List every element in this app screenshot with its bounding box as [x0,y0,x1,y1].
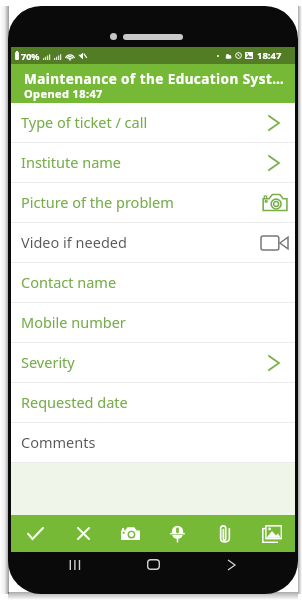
staticText: 70% [21,50,40,62]
button[interactable]: Recent apps [69,560,80,570]
button[interactable]: Take photo [107,515,154,552]
button[interactable]: Institute name [11,143,295,183]
button[interactable]: Contact name [11,263,295,303]
button[interactable]: Type of ticket / call [11,103,295,143]
button[interactable]: Severity [11,343,295,383]
button[interactable]: Comments [11,423,295,463]
staticText: Video if needed [21,232,127,252]
staticText: Requested date [21,392,128,412]
button[interactable]: Video if needed [11,223,295,263]
button[interactable]: Accept [11,515,59,552]
staticText: Severity [21,352,75,372]
button[interactable]: Gallery [248,515,295,552]
staticText: Picture of the problem [21,192,174,212]
staticText: Mobile number [21,312,126,332]
button[interactable]: Cancel [59,515,107,552]
button[interactable]: Attach file [201,515,248,552]
button[interactable]: Mobile number [11,303,295,343]
button[interactable]: Requested date [11,383,295,423]
staticText: Type of ticket / call [21,112,148,132]
button[interactable]: Back [228,560,235,570]
staticText: Institute name [21,152,122,172]
button[interactable]: Home [147,559,160,570]
staticText: Contact name [21,272,117,292]
button[interactable]: Picture of the problem [11,183,295,223]
staticText: Opened 18:47 [24,86,103,101]
staticText: 18:47 [257,49,282,62]
staticText: Comments [21,432,96,452]
button[interactable]: Record audio [154,515,201,552]
staticText: Maintenance of the Education Syst… [24,70,285,88]
